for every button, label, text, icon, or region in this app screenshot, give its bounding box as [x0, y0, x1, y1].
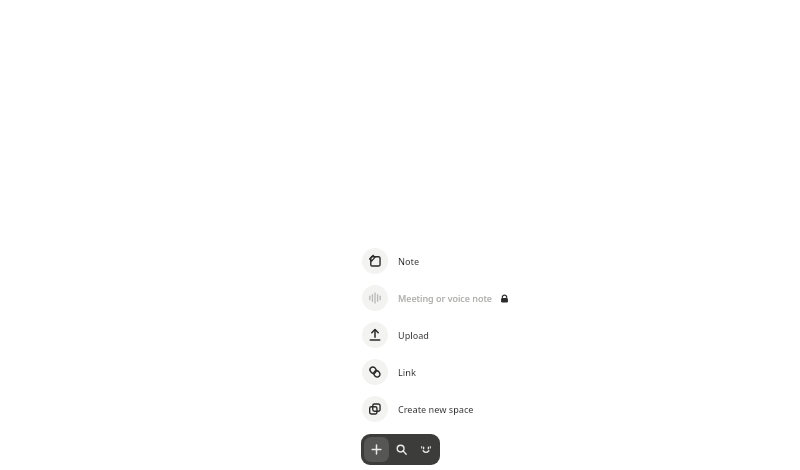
button[interactable]: Upload — [362, 322, 429, 348]
staticText: Link — [398, 366, 416, 378]
button[interactable]: Note — [362, 248, 420, 274]
button[interactable]: Create new space — [362, 396, 474, 422]
staticText: Create new space — [398, 403, 474, 415]
button[interactable]: Link — [362, 359, 416, 385]
button[interactable]: Assistant — [414, 437, 437, 462]
staticText: Meeting or voice note — [398, 292, 493, 304]
staticText: Note — [398, 255, 420, 267]
button[interactable]: Search — [389, 437, 414, 462]
staticText: Upload — [398, 329, 429, 341]
button[interactable]: Add — [364, 437, 389, 462]
button[interactable]: Meeting or voice note — [362, 285, 509, 311]
